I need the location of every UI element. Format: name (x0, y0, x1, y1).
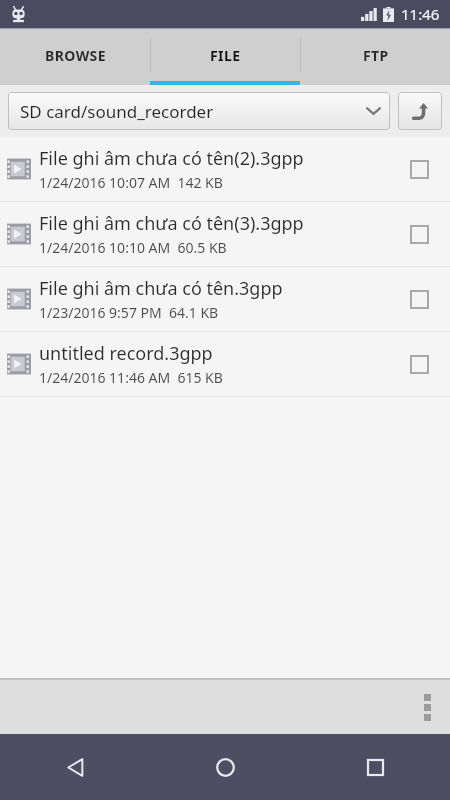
staticText: untitled record.3gpp (39, 341, 213, 366)
button[interactable]: Back (0, 734, 150, 800)
staticText: File ghi âm chưa có tên(3).3gpp (39, 211, 304, 236)
staticText: 11:46 (401, 4, 440, 24)
button[interactable]: FTP (301, 29, 450, 81)
button[interactable]: Select File ghi âm chưa có tên(3).3gpp (402, 217, 436, 251)
button[interactable]: File ghi âm chưa có tên(3).3gpp (0, 202, 450, 266)
button[interactable]: BROWSE (0, 29, 150, 81)
button[interactable]: SD card/sound_recorder (8, 92, 390, 130)
staticText: FILE (210, 46, 241, 65)
button[interactable]: Select untitled record.3gpp (402, 347, 436, 381)
button[interactable]: untitled record.3gpp (0, 332, 450, 396)
staticText: File ghi âm chưa có tên(2).3gpp (39, 146, 304, 171)
staticText: BROWSE (45, 46, 106, 65)
button[interactable]: Go to parent folder (398, 92, 442, 130)
button[interactable]: File ghi âm chưa có tên.3gpp (0, 267, 450, 331)
staticText: 1/24/2016 11:46 AM 615 KB (39, 368, 223, 387)
button[interactable]: Home (150, 734, 300, 800)
staticText: 1/24/2016 10:10 AM 60.5 KB (39, 238, 227, 257)
button[interactable]: FILE (151, 29, 300, 81)
staticText: FTP (363, 46, 389, 65)
button[interactable]: More options (404, 680, 450, 734)
staticText: SD card/sound_recorder (20, 100, 367, 123)
staticText: File ghi âm chưa có tên.3gpp (39, 276, 283, 301)
button[interactable]: File ghi âm chưa có tên(2).3gpp (0, 137, 450, 201)
button[interactable]: Recent apps (300, 734, 450, 800)
button[interactable]: Select File ghi âm chưa có tên.3gpp (402, 282, 436, 316)
staticText: 1/24/2016 10:07 AM 142 KB (39, 173, 223, 192)
staticText: 1/23/2016 9:57 PM 64.1 KB (39, 303, 219, 322)
button[interactable]: Select File ghi âm chưa có tên(2).3gpp (402, 152, 436, 186)
